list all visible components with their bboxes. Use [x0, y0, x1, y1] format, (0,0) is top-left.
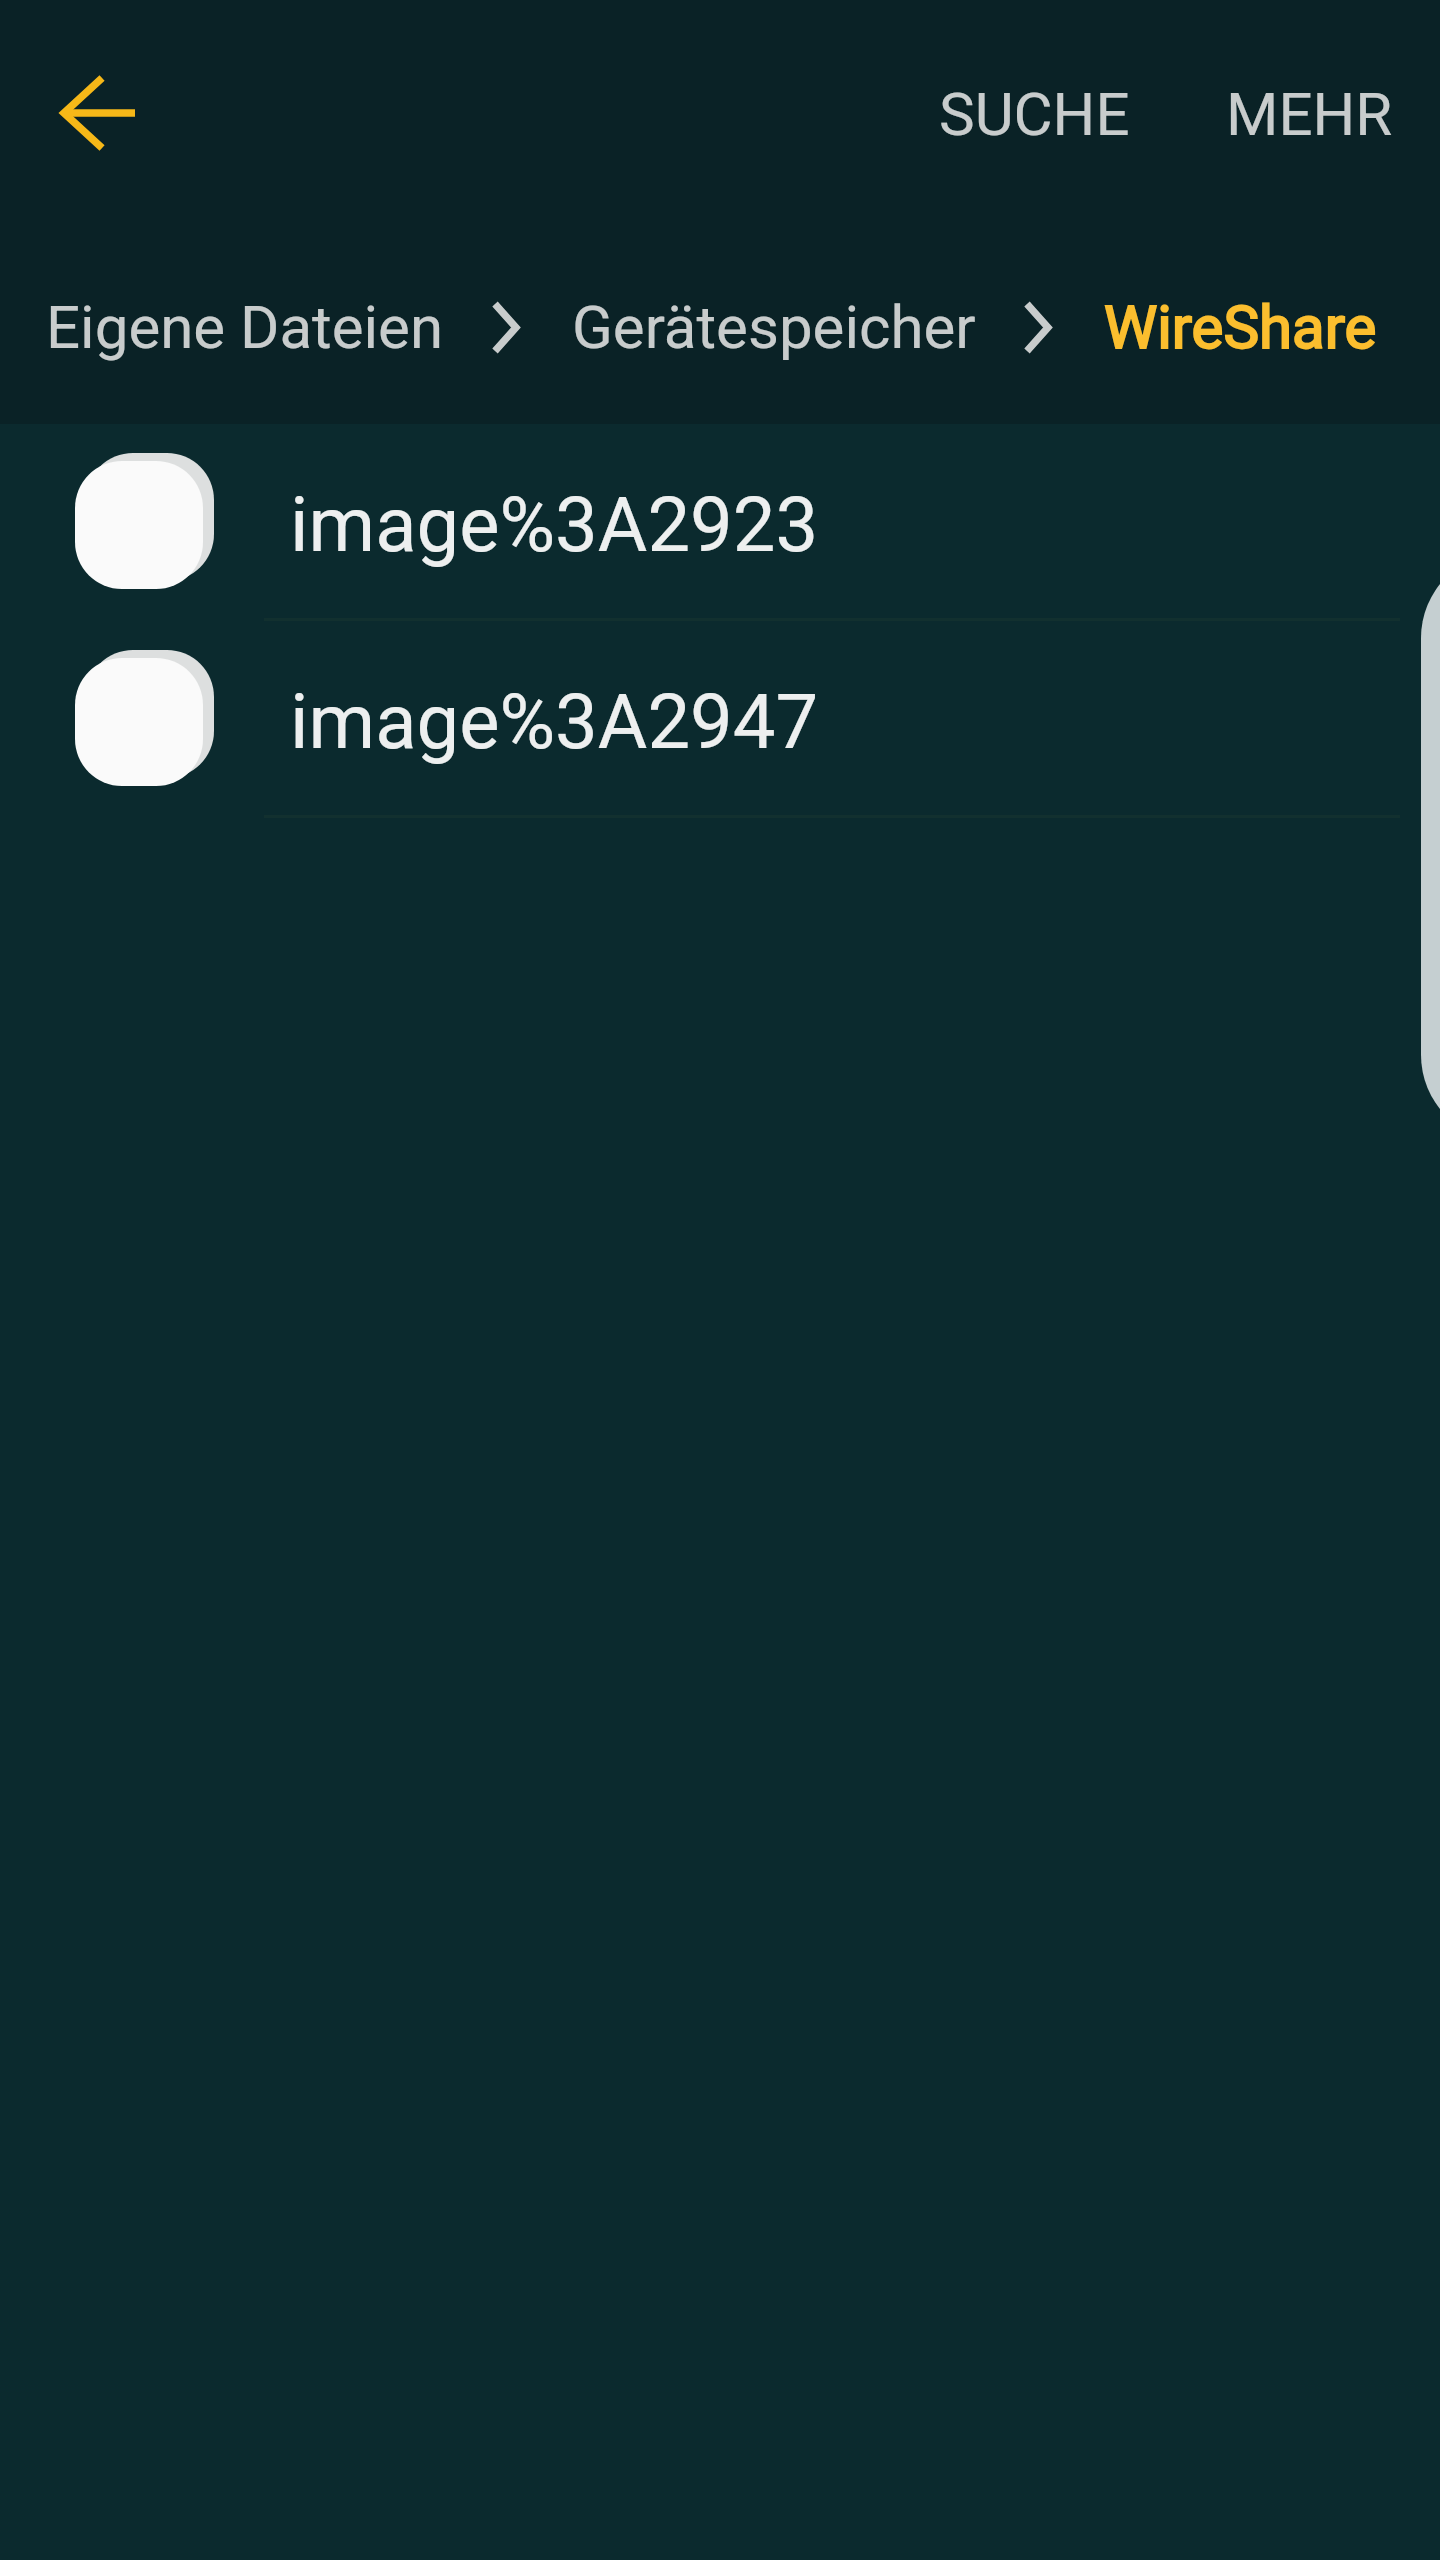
staticText: WireShare: [1104, 292, 1377, 362]
button[interactable]: image%3A2947: [0, 621, 1440, 818]
button[interactable]: Gerätespeicher: [572, 258, 976, 396]
staticText: SUCHE: [939, 79, 1130, 149]
staticText: image%3A2923: [290, 480, 819, 569]
button[interactable]: SUCHE: [915, 53, 1154, 175]
staticText: MEHR: [1226, 79, 1393, 149]
button[interactable]: WireShare: [1104, 258, 1377, 396]
button[interactable]: Eigene Dateien: [46, 258, 444, 396]
button[interactable]: MEHR: [1202, 53, 1440, 175]
staticText: Gerätespeicher: [572, 292, 976, 362]
button[interactable]: Back: [29, 80, 139, 150]
staticText: image%3A2947: [290, 677, 819, 766]
button[interactable]: image%3A2923: [0, 424, 1440, 621]
staticText: Eigene Dateien: [46, 292, 444, 362]
